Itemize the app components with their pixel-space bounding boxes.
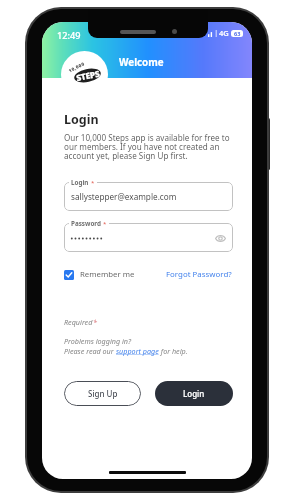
staticText: sallystepper@example.com [71, 191, 177, 202]
staticText: Login [183, 388, 205, 399]
button[interactable]: Show password [214, 232, 226, 244]
staticText: Sign Up [88, 388, 118, 399]
staticText: Login [64, 111, 99, 128]
button[interactable] [64, 182, 233, 211]
staticText: Login [71, 178, 89, 187]
staticText: 12:49 [57, 29, 81, 42]
staticText: 10,000 [68, 60, 85, 74]
button[interactable]: Forgot Password? [166, 269, 232, 280]
button[interactable]: Remember me [64, 269, 135, 280]
staticText: Please read our [64, 346, 116, 356]
staticText: STEPS [75, 67, 101, 83]
staticText: Problems logging in? [64, 336, 132, 346]
staticText: * [103, 220, 107, 228]
staticText: Remember me [80, 269, 135, 280]
staticText: 4G [219, 28, 229, 38]
staticText: * [93, 317, 97, 327]
button[interactable]: Sign Up [64, 381, 141, 406]
staticText: for help. [159, 346, 188, 356]
staticText: Password [71, 219, 101, 228]
staticText: Our 10,000 Steps app is available for fr… [64, 132, 236, 162]
button[interactable]: Login [155, 381, 233, 406]
staticText: Required [64, 317, 93, 327]
staticText: Welcome [119, 56, 164, 69]
staticText: * [91, 179, 95, 187]
button[interactable] [64, 223, 233, 252]
staticText: 63 [234, 30, 241, 37]
button[interactable]: support page [116, 346, 159, 356]
